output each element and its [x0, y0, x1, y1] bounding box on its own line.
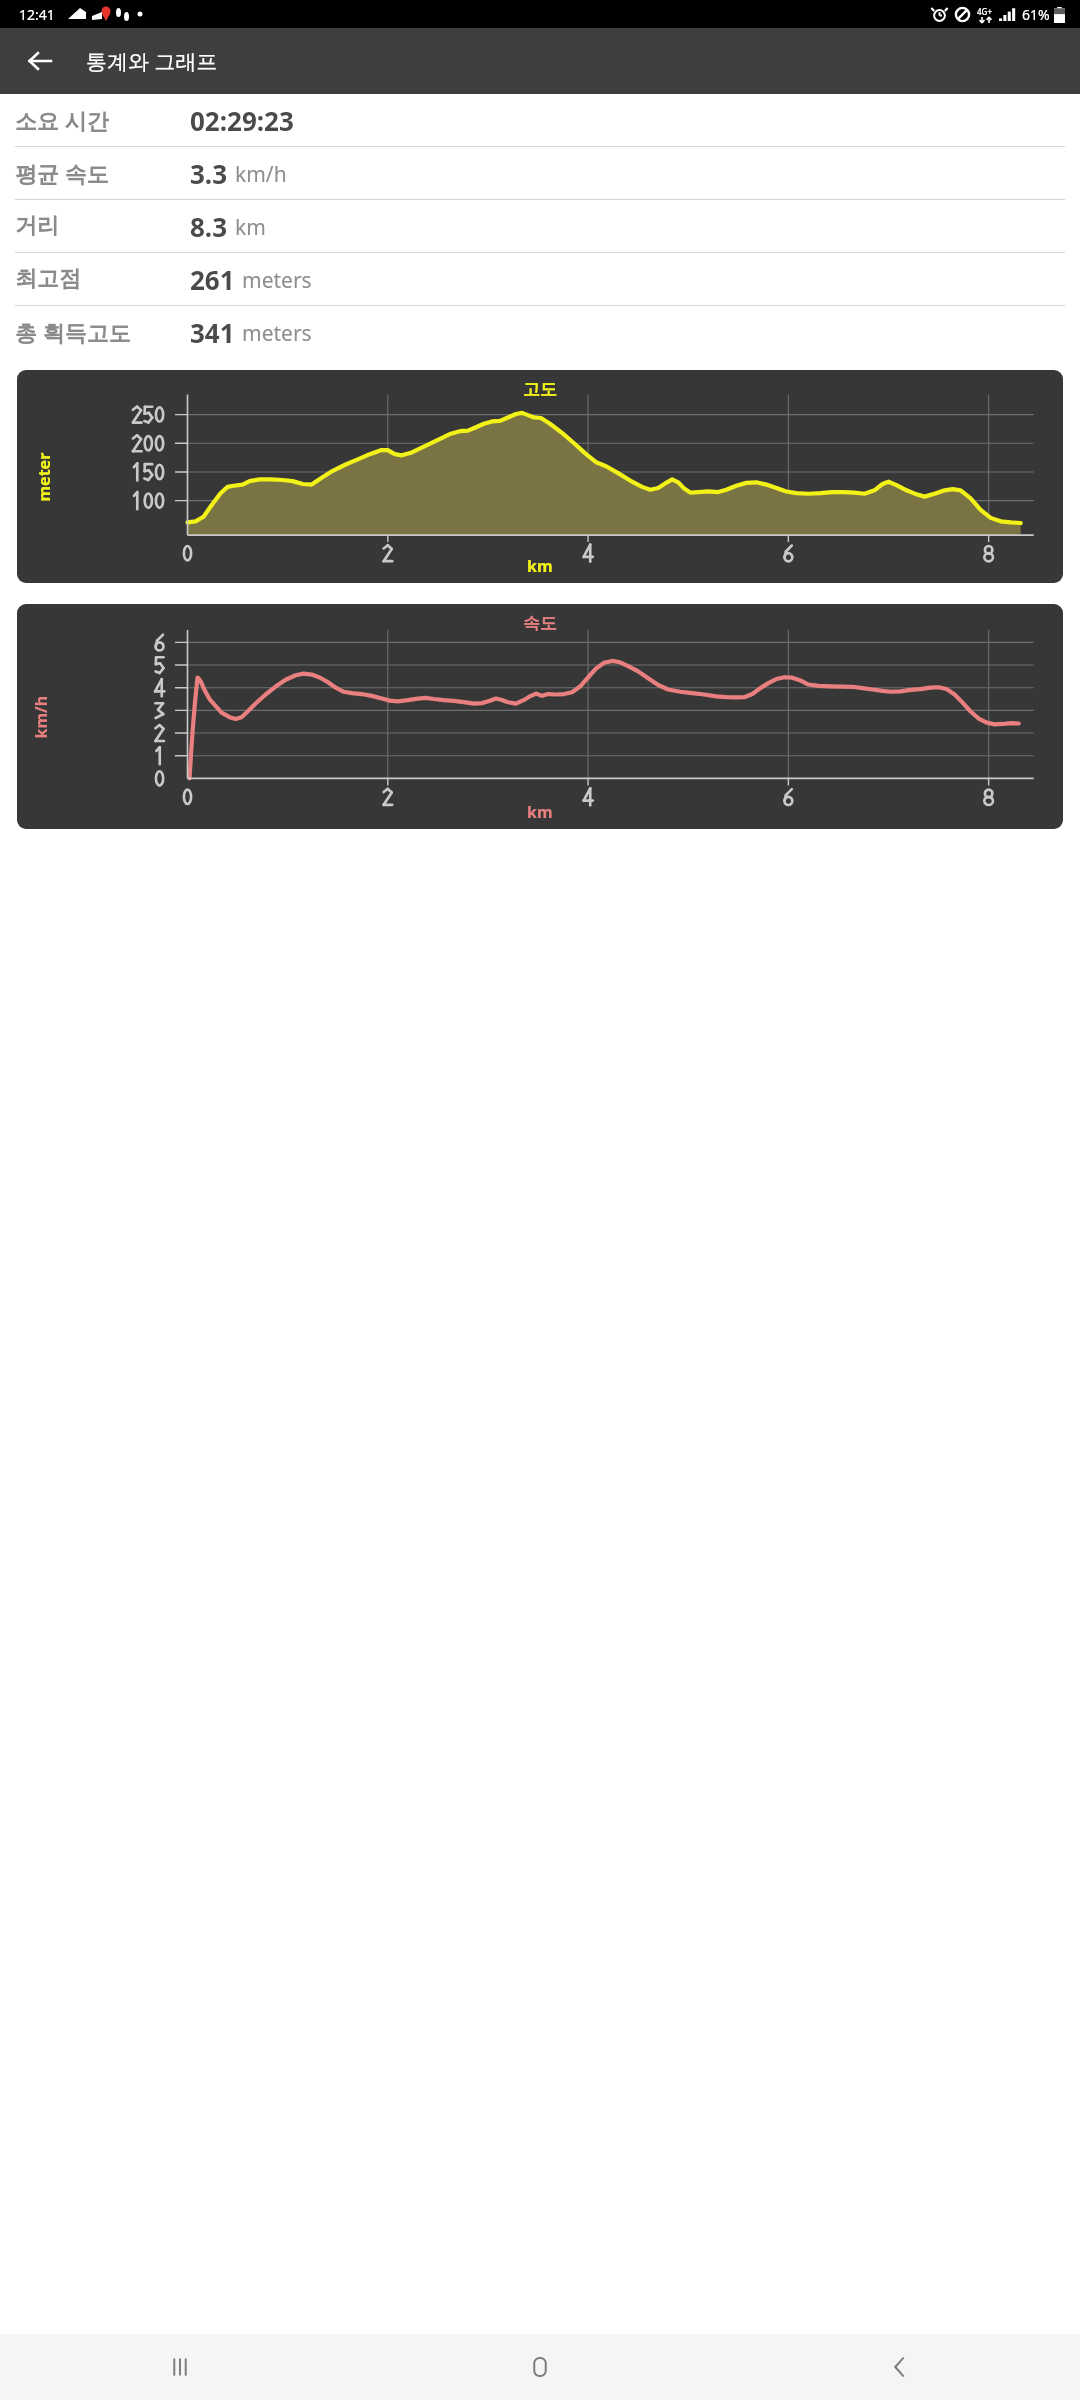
button[interactable]: Back	[720, 2334, 1080, 2400]
button[interactable]: 소요 시간	[15, 94, 1065, 146]
staticText: 총 획득고도	[15, 317, 190, 347]
staticText: 341	[190, 315, 235, 350]
staticText: km/h	[29, 695, 51, 738]
staticText: 최고점	[15, 265, 190, 293]
staticText: 61%	[1022, 5, 1050, 24]
staticText: 3.3	[190, 156, 228, 191]
staticText: 4G+	[977, 6, 992, 17]
staticText: 02:29:23	[190, 103, 294, 138]
staticText: meters	[242, 319, 312, 348]
button[interactable]: 고도	[17, 370, 1063, 583]
button[interactable]: Home	[360, 2334, 720, 2400]
button[interactable]: Recents	[0, 2334, 360, 2400]
staticText: 261	[190, 262, 235, 297]
staticText: 통계와 그래프	[86, 47, 218, 76]
staticText: km	[235, 213, 266, 242]
staticText: 고도	[523, 379, 557, 400]
staticText: 12:41	[19, 5, 55, 24]
button[interactable]: 최고점	[15, 253, 1065, 305]
button[interactable]: 거리	[15, 200, 1065, 252]
button[interactable]: 총 획득고도	[15, 306, 1065, 358]
button[interactable]: 속도	[17, 604, 1063, 829]
staticText: km/h	[235, 160, 287, 189]
staticText: meter	[32, 452, 54, 501]
staticText: meters	[242, 266, 312, 295]
staticText: 속도	[523, 613, 557, 634]
staticText: 거리	[15, 212, 190, 240]
staticText: km	[527, 801, 553, 823]
staticText: km	[527, 555, 553, 577]
button[interactable]: 평균 속도	[15, 147, 1065, 199]
button[interactable]: Back	[16, 37, 64, 85]
staticText: 평균 속도	[15, 158, 190, 188]
staticText: 소요 시간	[15, 105, 190, 135]
staticText: 8.3	[190, 209, 228, 244]
